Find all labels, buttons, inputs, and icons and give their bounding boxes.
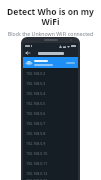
button[interactable]: 192.168.0.5 [23, 98, 78, 108]
staticText: 192.168.0.3 [26, 81, 46, 86]
button[interactable]: 192.168.0.8 [23, 128, 78, 138]
staticText: 192.168.0.10 [26, 151, 48, 156]
button[interactable]: 192.168.0.2 [23, 68, 78, 78]
button[interactable]: 192.168.0.11 [23, 158, 78, 168]
staticText: 192.168.0.5 [26, 101, 46, 106]
staticText: Detect Who is on my WiFi [3, 6, 98, 27]
button[interactable]: 192.168.0.3 [23, 78, 78, 88]
button[interactable]: 192.168.0.13 [23, 178, 78, 180]
button[interactable]: 192.168.0.6 [23, 108, 78, 118]
button[interactable]: Back [23, 49, 32, 57]
button[interactable]: 192.168.0.4 [23, 88, 78, 98]
staticText: 192.168.0.11 [26, 161, 48, 166]
button[interactable]: 192.168.0.7 [23, 118, 78, 128]
staticText: 192.168.0.12 [26, 171, 48, 176]
button[interactable]: 192.168.0.9 [23, 138, 78, 148]
staticText: 192.168.0.9 [26, 141, 46, 146]
button[interactable]: 192.168.0.10 [23, 148, 78, 158]
staticText: 192.168.0.2 [26, 71, 46, 76]
button[interactable]: 192.168.0.12 [23, 168, 78, 178]
staticText: 192.168.0.8 [26, 131, 46, 136]
staticText: Block the Unknown WiFi connected from my… [4, 30, 97, 44]
staticText: 192.168.0.4 [26, 91, 46, 96]
staticText: 192.168.0.7 [26, 121, 46, 126]
staticText: 192.168.0.13 [26, 178, 48, 180]
button[interactable] [23, 57, 78, 68]
staticText: 192.168.0.6 [26, 111, 46, 116]
